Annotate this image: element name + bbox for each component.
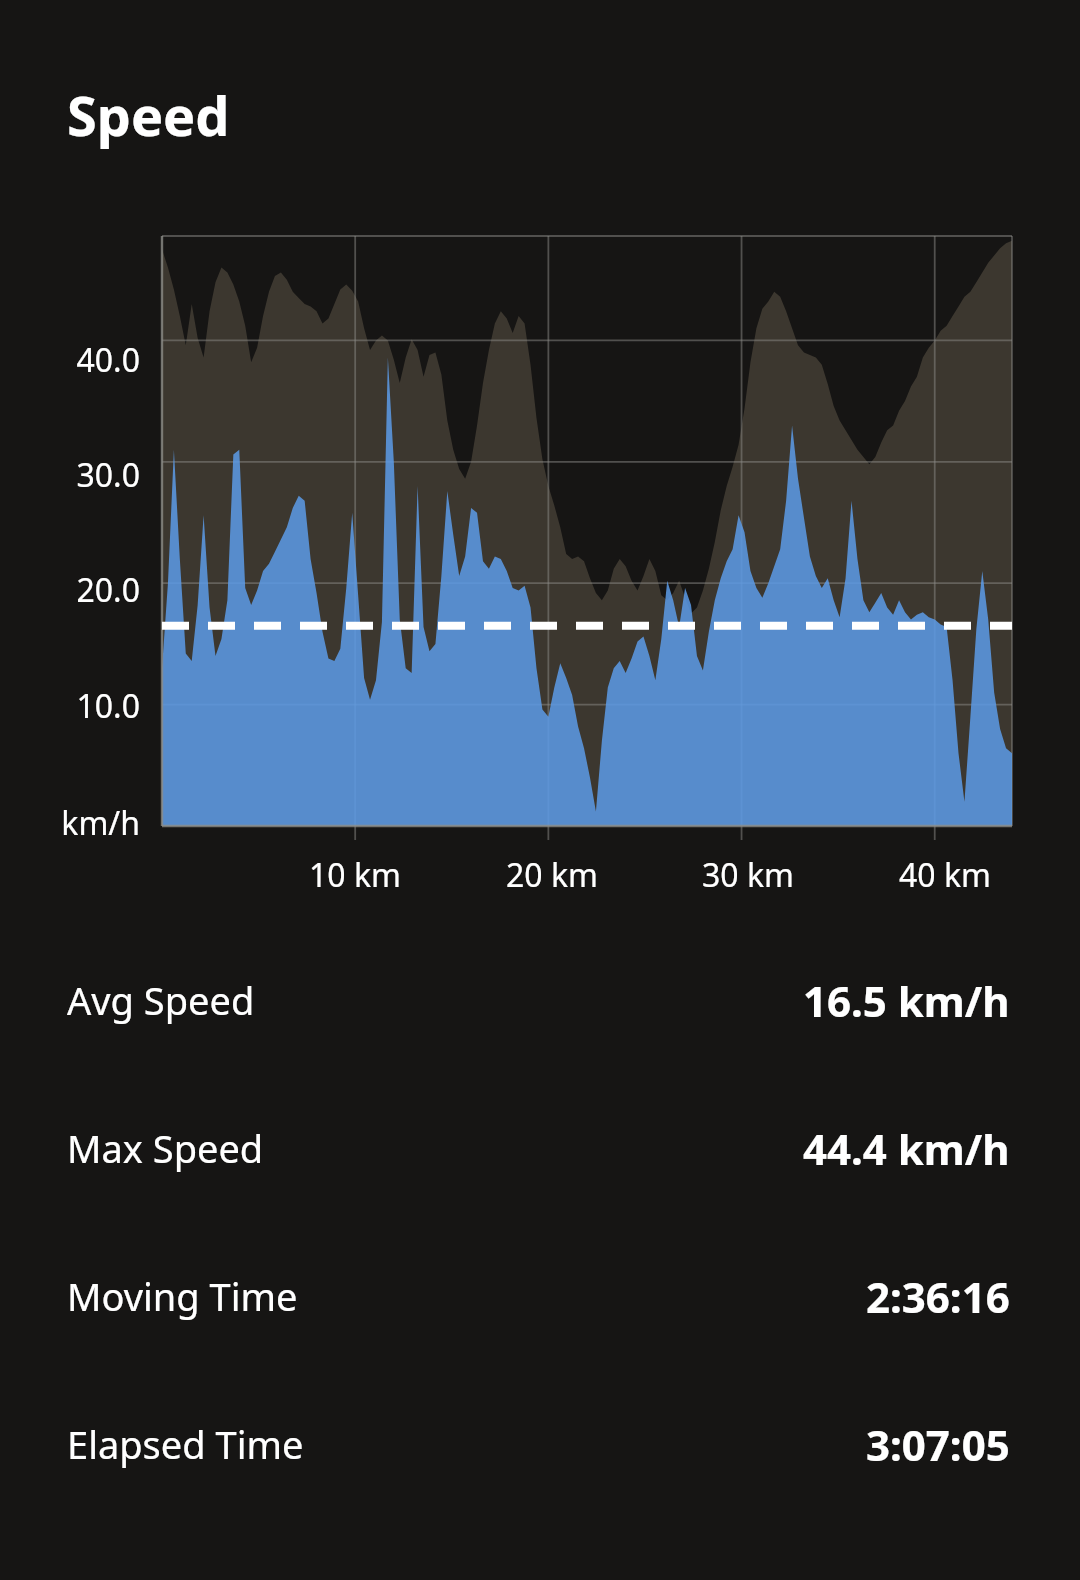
button[interactable]: Avg Speed (0, 926, 1080, 1074)
staticText: 3:07:05 (866, 1416, 1010, 1473)
button[interactable]: Elapsed Time (0, 1370, 1080, 1518)
staticText: Speed (67, 78, 230, 152)
staticText: Elapsed Time (67, 1418, 304, 1470)
staticText: 30.0 (0, 453, 140, 497)
staticText: 40.0 (0, 338, 140, 382)
staticText: 10.0 (0, 684, 140, 728)
staticText: Moving Time (67, 1270, 298, 1322)
staticText: km/h (0, 801, 140, 845)
button[interactable]: Moving Time (0, 1222, 1080, 1370)
staticText: 2:36:16 (866, 1268, 1010, 1325)
button[interactable]: Max Speed (0, 1074, 1080, 1222)
staticText: Avg Speed (67, 974, 255, 1026)
staticText: 20 km (462, 853, 642, 897)
staticText: 10 km (265, 853, 445, 897)
staticText: 20.0 (0, 568, 140, 612)
staticText: 40 km (855, 853, 1035, 897)
staticText: Max Speed (67, 1122, 264, 1174)
staticText: 44.4 km/h (803, 1120, 1010, 1177)
staticText: 16.5 km/h (803, 972, 1010, 1029)
staticText: 30 km (658, 853, 838, 897)
